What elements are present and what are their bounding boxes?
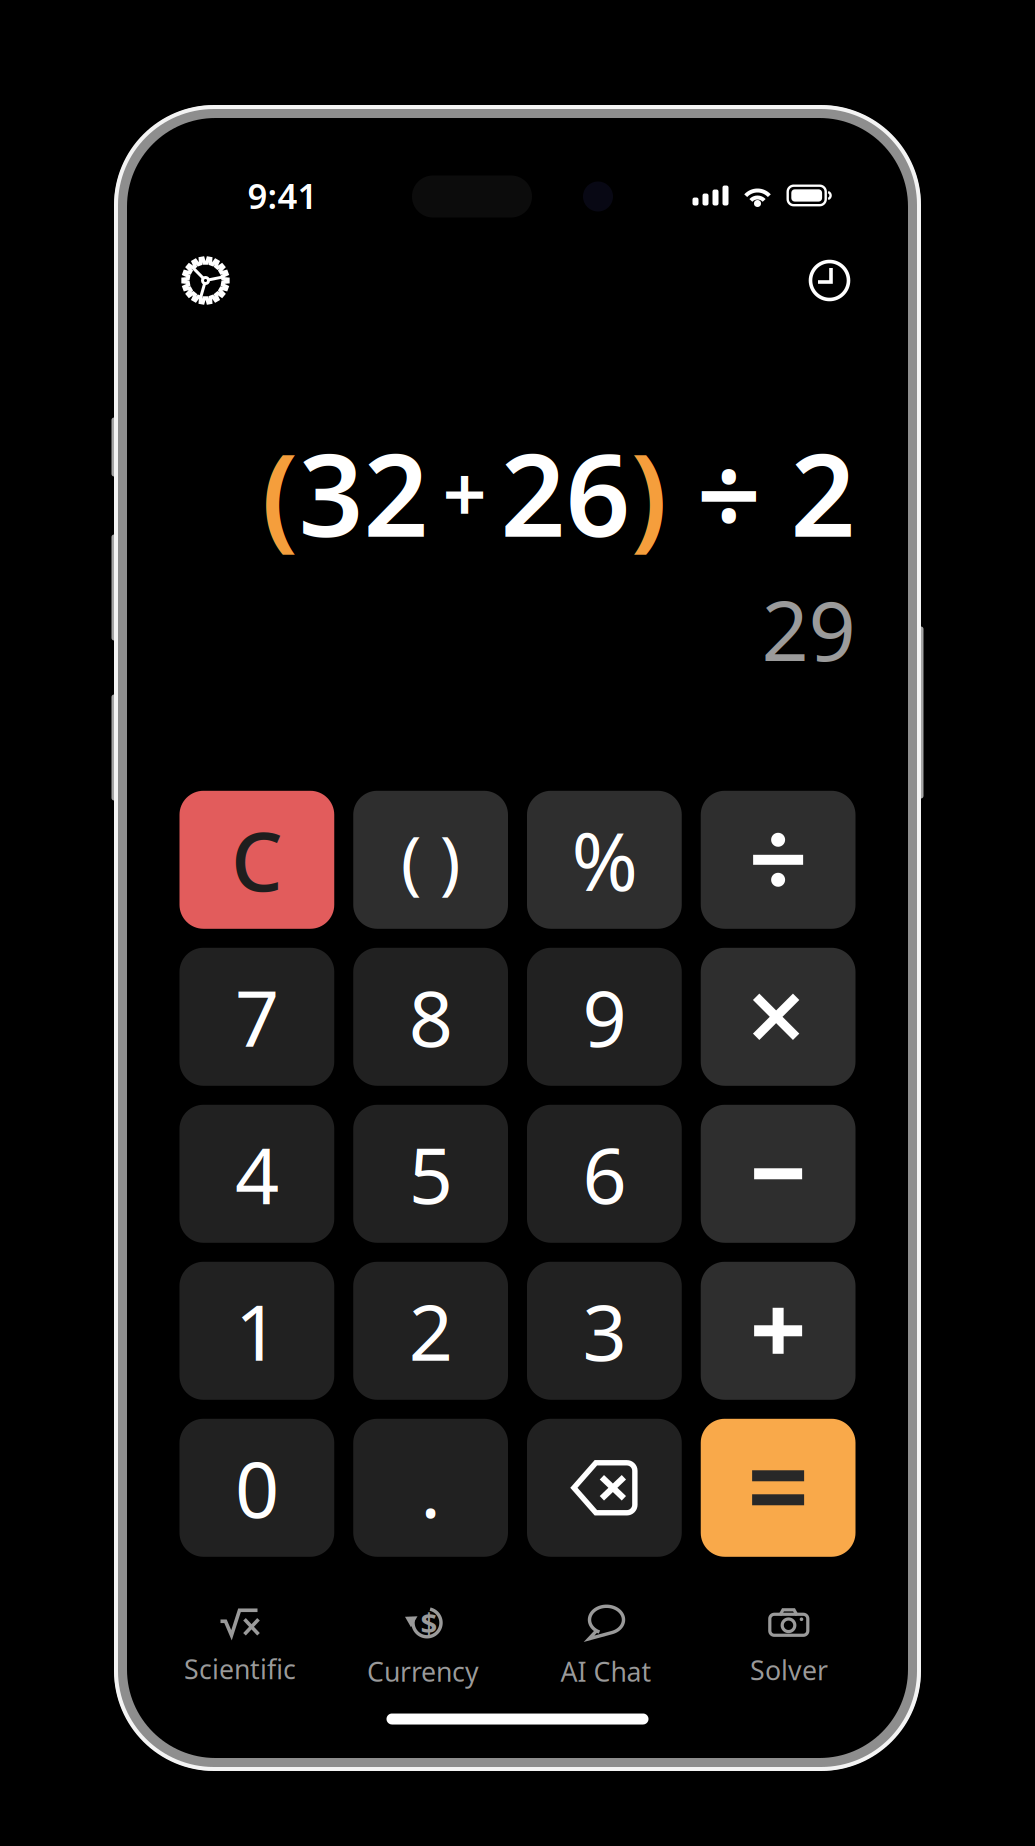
staticText: 6	[582, 1122, 626, 1225]
button[interactable]: 2	[353, 1262, 508, 1400]
button[interactable]: Multiply	[701, 948, 856, 1086]
staticText: Currency	[367, 1654, 479, 1689]
staticText: 2	[409, 1279, 453, 1382]
button[interactable]: History	[808, 259, 850, 301]
staticText: 8	[409, 965, 453, 1068]
staticText: ( )	[401, 814, 461, 906]
button[interactable]: 4	[179, 1105, 334, 1243]
staticText: 9	[582, 965, 626, 1068]
button[interactable]: Plus	[701, 1262, 856, 1400]
staticText: C	[231, 806, 283, 914]
button[interactable]: AI Chat	[514, 1606, 697, 1689]
button[interactable]: Scientific	[148, 1608, 331, 1687]
button[interactable]: Divide	[701, 791, 856, 929]
button[interactable]: 3	[527, 1262, 682, 1400]
button[interactable]: 0	[179, 1419, 334, 1557]
staticText: AI Chat	[560, 1654, 651, 1689]
staticText: Scientific	[184, 1651, 296, 1687]
button[interactable]: Equals	[701, 1419, 856, 1557]
staticText: 7	[235, 965, 279, 1068]
staticText: 26	[500, 417, 630, 568]
button[interactable]: 8	[353, 948, 508, 1086]
staticText: 1	[235, 1279, 279, 1382]
staticText: 0	[235, 1436, 279, 1539]
button[interactable]: 9	[527, 948, 682, 1086]
button[interactable]: Minus	[701, 1105, 856, 1243]
staticText: $	[420, 1603, 437, 1642]
staticText: 9:41	[247, 172, 317, 218]
button[interactable]: ( )	[353, 791, 508, 929]
button[interactable]: Settings	[182, 257, 228, 303]
button[interactable]: %	[527, 791, 682, 929]
button[interactable]: Backspace	[527, 1419, 682, 1557]
button[interactable]: 5	[353, 1105, 508, 1243]
staticText: %	[571, 807, 637, 913]
staticText: 29	[761, 574, 855, 684]
button[interactable]: .	[353, 1419, 508, 1557]
staticText: 32	[298, 417, 428, 568]
button[interactable]: 6	[527, 1105, 682, 1243]
staticText: (	[261, 417, 298, 568]
button[interactable]: Solver	[697, 1607, 880, 1688]
staticText: .	[420, 1436, 441, 1539]
button[interactable]: 7	[179, 948, 334, 1086]
staticText: )	[630, 417, 667, 568]
button[interactable]: C	[179, 791, 334, 929]
staticText: Solver	[750, 1652, 828, 1688]
staticText: 3	[582, 1279, 626, 1382]
button[interactable]: $	[331, 1606, 514, 1689]
staticText: ÷ 2	[667, 417, 855, 568]
button[interactable]: 1	[179, 1262, 334, 1400]
staticText: 5	[409, 1122, 453, 1225]
staticText: 4	[235, 1122, 279, 1225]
staticText: +	[442, 441, 486, 544]
